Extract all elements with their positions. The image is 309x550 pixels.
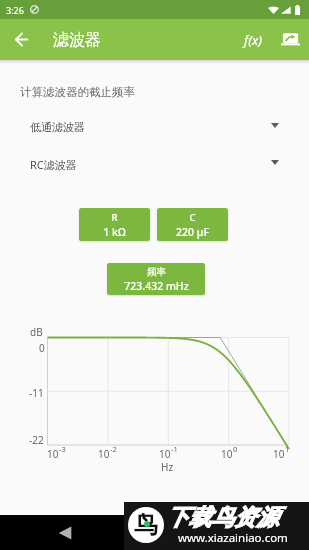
staticText: 频率 [147, 266, 166, 278]
staticText: 低通滤波器 [30, 120, 85, 134]
staticText: 220 µF [176, 225, 209, 239]
staticText: 10 [159, 447, 171, 461]
button[interactable]: 低通滤波器 [0, 114, 309, 140]
staticText: 10 [273, 447, 285, 461]
button[interactable]: 频率 [107, 263, 205, 295]
staticText: 滤波器 [53, 30, 101, 50]
staticText: 10 [221, 447, 233, 461]
staticText: 0 [39, 341, 45, 355]
staticText: -11 [29, 386, 44, 400]
button[interactable]: RC滤波器 [0, 151, 309, 177]
staticText: -3 [59, 444, 66, 454]
staticText: 10 [98, 447, 110, 461]
staticText: 3:26 [6, 4, 24, 16]
staticText: Hz [161, 460, 174, 474]
button[interactable]: R [79, 208, 150, 241]
button[interactable]: Export chart [271, 20, 309, 59]
button[interactable]: Back [50, 518, 80, 548]
staticText: -22 [29, 433, 44, 447]
staticText: 1 [285, 444, 290, 454]
staticText: dB [30, 325, 43, 339]
staticText: -2 [110, 444, 117, 454]
staticText: f(x) [244, 31, 262, 49]
staticText: R [111, 211, 118, 224]
staticText: 计算滤波器的截止频率 [20, 85, 135, 99]
staticText: 0 [233, 444, 238, 454]
staticText: 1 kΩ [103, 225, 126, 239]
staticText: RC滤波器 [30, 157, 77, 172]
button[interactable]: Back [8, 26, 35, 53]
staticText: -1 [171, 444, 178, 454]
button[interactable]: C [157, 208, 228, 241]
staticText: 鸟 [134, 510, 158, 540]
staticText: 723.432 mHz [124, 279, 189, 293]
button[interactable]: f(x) [235, 20, 271, 59]
staticText: 10 [47, 447, 59, 461]
staticText: 下载鸟资源 [166, 503, 279, 531]
staticText: www.xiazainiao.com [178, 530, 288, 546]
staticText: C [189, 211, 196, 224]
